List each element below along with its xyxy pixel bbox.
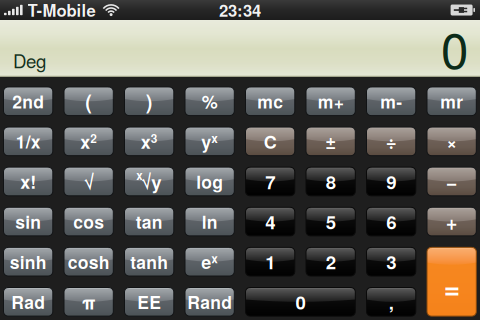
staticText: , <box>389 288 394 315</box>
button[interactable]: x <box>124 127 174 156</box>
staticText: x! <box>20 169 36 194</box>
button[interactable]: Decimal separator <box>366 287 416 316</box>
button[interactable]: 1/x <box>3 127 53 156</box>
staticText: cosh <box>68 249 110 274</box>
button[interactable]: e <box>185 247 234 276</box>
button[interactable]: 4 <box>245 207 295 236</box>
button[interactable]: Clear <box>245 127 295 156</box>
staticText: 4 <box>265 208 275 235</box>
staticText: √ <box>84 168 94 195</box>
staticText: 2 <box>326 248 336 275</box>
button[interactable]: 0 <box>245 287 355 316</box>
button[interactable]: √ <box>64 167 113 196</box>
button[interactable]: Divide <box>366 127 416 156</box>
staticText: sinh <box>10 249 47 274</box>
staticText: ln <box>202 209 218 234</box>
staticText: = <box>444 267 460 307</box>
staticText: π <box>82 288 96 315</box>
button[interactable]: 6 <box>366 207 416 236</box>
button[interactable]: x <box>64 127 113 156</box>
staticText: ÷ <box>386 128 397 155</box>
button[interactable]: mr <box>427 87 476 116</box>
button[interactable]: tanh <box>124 247 174 276</box>
button[interactable]: log <box>185 167 234 196</box>
button[interactable]: Minus <box>427 167 476 196</box>
staticText: C <box>264 128 277 154</box>
staticText: sin <box>15 209 41 234</box>
button[interactable]: cos <box>64 207 113 236</box>
staticText: x <box>80 128 90 154</box>
button[interactable]: 9 <box>366 167 416 196</box>
button[interactable]: 7 <box>245 167 295 196</box>
button[interactable]: sinh <box>3 247 53 276</box>
staticText: 0 <box>441 12 468 83</box>
button[interactable]: m+ <box>306 87 355 116</box>
button[interactable]: Plus <box>427 207 476 236</box>
staticText: √y <box>141 168 161 195</box>
button[interactable]: y <box>185 127 234 156</box>
staticText: 23:34 <box>219 0 261 22</box>
staticText: 1/x <box>16 129 41 154</box>
staticText: − <box>446 167 458 196</box>
button[interactable]: cosh <box>64 247 113 276</box>
button[interactable]: 2 <box>306 247 355 276</box>
staticText: log <box>196 169 223 194</box>
staticText: 3 <box>386 248 396 275</box>
staticText: % <box>202 88 218 114</box>
staticText: Deg <box>13 47 46 73</box>
staticText: 7 <box>265 168 275 195</box>
button[interactable]: Multiply <box>427 127 476 156</box>
button[interactable]: tan <box>124 207 174 236</box>
staticText: m+ <box>318 89 344 114</box>
staticText: 2nd <box>12 89 44 114</box>
staticText: y <box>201 128 211 154</box>
button[interactable]: m- <box>366 87 416 116</box>
staticText: tan <box>136 209 163 234</box>
staticText: 3 <box>151 130 158 147</box>
staticText: x <box>211 250 218 267</box>
staticText: ± <box>325 128 336 155</box>
button[interactable]: Plus minus <box>306 127 355 156</box>
button[interactable]: x! <box>3 167 53 196</box>
staticText: Rad <box>11 289 45 314</box>
staticText: tanh <box>130 249 168 274</box>
button[interactable]: sin <box>3 207 53 236</box>
staticText: cos <box>73 209 104 234</box>
button[interactable]: Rad <box>3 287 53 316</box>
button[interactable]: ( <box>64 87 113 116</box>
staticText: Rand <box>187 289 232 314</box>
staticText: 6 <box>386 208 396 235</box>
staticText: 0 <box>295 288 305 315</box>
staticText: mr <box>440 89 463 114</box>
staticText: + <box>446 207 458 236</box>
button[interactable]: mc <box>245 87 295 116</box>
staticText: ( <box>85 87 92 116</box>
button[interactable]: ) <box>124 87 174 116</box>
button[interactable]: 5 <box>306 207 355 236</box>
staticText: x <box>141 128 151 154</box>
button[interactable]: EE <box>124 287 174 316</box>
staticText: 2 <box>90 130 97 147</box>
button[interactable]: 3 <box>366 247 416 276</box>
button[interactable]: ln <box>185 207 234 236</box>
button[interactable]: 1 <box>245 247 295 276</box>
button[interactable]: Rand <box>185 287 234 316</box>
staticText: EE <box>137 289 161 314</box>
staticText: x <box>211 130 218 147</box>
staticText: mc <box>257 89 283 114</box>
button[interactable]: Equals <box>427 247 476 316</box>
button[interactable]: % <box>185 87 234 116</box>
staticText: T-Mobile <box>28 0 96 22</box>
staticText: 9 <box>386 168 396 195</box>
button[interactable]: √y <box>124 167 174 196</box>
staticText: m- <box>380 89 402 114</box>
staticText: 1 <box>265 248 275 275</box>
staticText: 8 <box>326 168 336 195</box>
staticText: × <box>446 128 457 155</box>
button[interactable]: 2nd <box>3 87 53 116</box>
staticText: ) <box>146 87 153 116</box>
staticText: 5 <box>326 208 336 235</box>
button[interactable]: Pi <box>64 287 113 316</box>
staticText: x <box>136 167 142 183</box>
button[interactable]: 8 <box>306 167 355 196</box>
